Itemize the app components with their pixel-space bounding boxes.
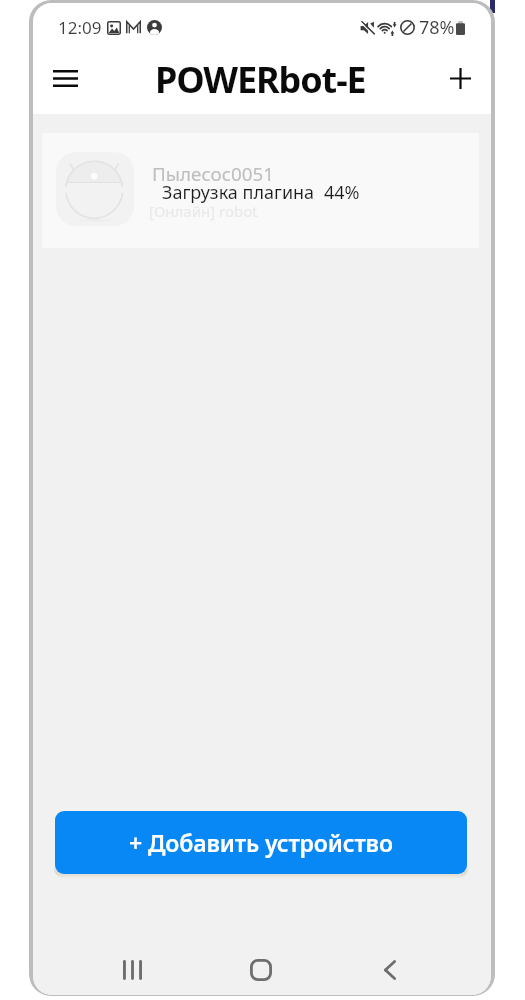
staticText: Пылесос0051 [152, 161, 274, 187]
staticText: + Добавить устройство [129, 827, 393, 858]
button[interactable]: Menu [41, 54, 89, 102]
button[interactable]: + Добавить устройство [55, 811, 467, 874]
staticText: 78% [419, 15, 455, 40]
button[interactable]: Back [357, 937, 423, 995]
button[interactable]: Home [228, 937, 294, 995]
button[interactable]: Пылесос0051 [42, 133, 479, 248]
button[interactable]: Recent apps [99, 937, 165, 995]
staticText: 12:09 [58, 16, 102, 39]
staticText: Загрузка плагина [162, 180, 315, 205]
staticText: 44% [324, 180, 360, 205]
button[interactable]: Add [436, 54, 484, 102]
staticText: POWERbot-E [155, 55, 366, 104]
staticText: [Онлайн] robot [149, 201, 258, 221]
